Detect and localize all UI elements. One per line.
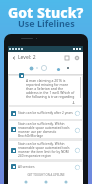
staticText: Stain can be sufficiently after 2 years bbox=[18, 111, 73, 115]
staticText: Stain can be sufficiently. Within reason… bbox=[18, 122, 73, 138]
staticText: Level: 2 bbox=[18, 54, 36, 61]
staticText: GET TOUGHT ON A LIFELINE bbox=[27, 173, 65, 177]
staticText: Use Lifelines bbox=[18, 17, 75, 29]
other: Scroll down bbox=[71, 100, 75, 104]
button[interactable]: Back bbox=[10, 54, 17, 61]
button[interactable]: More options bbox=[73, 54, 80, 61]
button[interactable]: Skip bbox=[66, 66, 69, 69]
staticText: A man claiming a 2016 is reported missin… bbox=[26, 78, 75, 99]
button[interactable]: Tab 1 bbox=[43, 180, 48, 184]
button[interactable]: Bookmark bbox=[63, 54, 70, 61]
button[interactable]: Stain can be sufficiently after 2 years bbox=[9, 107, 82, 119]
button[interactable]: Tab 0 bbox=[23, 180, 28, 184]
button[interactable]: Timer bbox=[40, 64, 47, 71]
button[interactable]: Reveal bbox=[55, 66, 61, 72]
button[interactable]: Tab 2 bbox=[63, 180, 68, 184]
staticText: All services bbox=[18, 165, 73, 169]
button[interactable]: All services bbox=[9, 162, 82, 171]
button[interactable]: Stain can be sufficiently. Within reason… bbox=[9, 121, 82, 138]
button[interactable]: Hint bbox=[28, 65, 34, 71]
button[interactable]: Stain can be sufficiently. Within reason… bbox=[9, 141, 82, 159]
staticText: Stain can be sufficiently. Within reason… bbox=[18, 142, 73, 158]
staticText: Got Stuck? bbox=[8, 3, 84, 22]
